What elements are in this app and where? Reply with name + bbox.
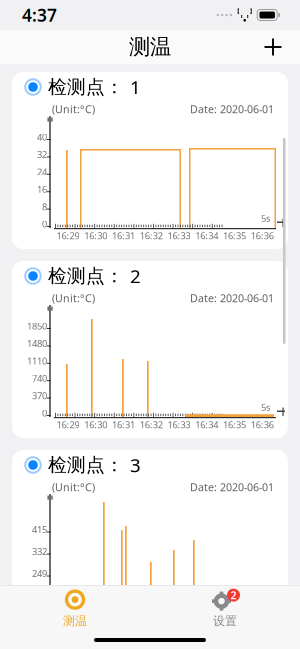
staticText: 16:34 [195, 418, 218, 431]
staticText: 16:32 [140, 229, 163, 242]
staticText: 2 [230, 588, 236, 602]
staticText: 检测点： [48, 75, 124, 98]
button[interactable]: 检测点： [12, 450, 288, 480]
staticText: 4:37 [22, 3, 57, 26]
button[interactable]: 检测点： [12, 261, 288, 291]
staticText: 740 [32, 372, 47, 384]
staticText: 16:29 [56, 229, 79, 242]
staticText: 16:33 [167, 229, 190, 242]
staticText: 332 [32, 545, 47, 558]
staticText: 1480 [27, 337, 47, 350]
button[interactable]: 测温 [0, 585, 150, 631]
staticText: 16:31 [112, 229, 135, 242]
staticText: Date: 2020-06-01 [190, 102, 274, 116]
staticText: 检测点： [48, 264, 124, 287]
staticText: 415 [32, 523, 47, 536]
button[interactable]: 检测点： [12, 72, 288, 102]
staticText: 16:32 [140, 418, 163, 431]
staticText: 5s [261, 212, 270, 224]
staticText: 测温 [63, 614, 87, 628]
staticText: 1850 [27, 320, 47, 332]
staticText: Date: 2020-06-01 [190, 291, 274, 305]
staticText: 24 [37, 166, 47, 178]
staticText: 16:35 [223, 229, 246, 242]
staticText: 32 [37, 148, 47, 161]
staticText: 16:31 [112, 418, 135, 431]
staticText: (Unit:°C) [52, 480, 95, 494]
staticText: 测温 [129, 34, 171, 60]
staticText: 16:29 [56, 418, 79, 431]
staticText: 设置 [213, 614, 237, 628]
staticText: 249 [32, 567, 47, 580]
staticText: 16:30 [84, 418, 107, 431]
staticText: 1110 [27, 355, 47, 367]
staticText: 16:33 [167, 418, 190, 431]
staticText: 16 [37, 183, 47, 195]
button[interactable]: Add measurement point [252, 30, 294, 64]
staticText: 8 [42, 200, 47, 213]
staticText: 370 [32, 389, 47, 402]
staticText: 2 [130, 264, 141, 288]
staticText: (Unit:°C) [52, 102, 95, 116]
staticText: 1 [130, 75, 141, 99]
staticText: Date: 2020-06-01 [190, 480, 274, 494]
staticText: 5s [261, 401, 270, 413]
staticText: 16:30 [84, 229, 107, 242]
staticText: 16:36 [251, 418, 274, 431]
staticText: 40 [37, 131, 47, 143]
staticText: (Unit:°C) [52, 291, 95, 305]
button[interactable]: 2 [150, 585, 300, 631]
staticText: 0 [42, 407, 47, 419]
staticText: 16:35 [223, 418, 246, 431]
staticText: 16:36 [251, 229, 274, 242]
staticText: 3 [130, 453, 141, 477]
staticText: 检测点： [48, 453, 124, 476]
staticText: 16:34 [195, 229, 218, 242]
staticText: 0 [42, 218, 47, 230]
